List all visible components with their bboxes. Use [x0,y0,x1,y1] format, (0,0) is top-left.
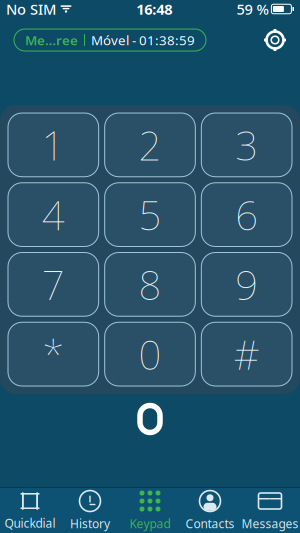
button[interactable]: # [201,322,292,386]
button[interactable]: Contacts [180,488,240,532]
staticText: 7 [42,258,65,311]
staticText: 16:48 [136,0,172,19]
button[interactable]: Quickdial [0,488,60,532]
staticText: 2 [138,118,161,171]
button[interactable]: Call [0,394,300,444]
staticText: 59 % [236,0,268,19]
staticText: 1 [42,118,65,171]
staticText: 9 [235,258,258,311]
staticText: No SIM [6,0,56,19]
button[interactable]: Me…ree [14,29,206,51]
button[interactable]: History [60,488,120,532]
staticText: Quickdial [4,515,55,531]
staticText: Contacts [185,515,234,531]
staticText: 5 [138,188,161,241]
staticText: 4 [42,188,65,241]
staticText: Messages [241,515,298,531]
staticText: 0 [138,328,161,381]
button[interactable]: Settings [258,23,292,57]
button[interactable]: 5 [105,183,195,247]
button[interactable]: 8 [105,252,195,316]
button[interactable]: 1 [8,113,99,177]
button[interactable]: 7 [8,252,99,316]
staticText: 3 [235,118,258,171]
staticText: 8 [138,258,161,311]
staticText: # [234,328,260,381]
button[interactable]: 2 [105,113,195,177]
button[interactable]: * [8,322,99,386]
staticText: Móvel - 01:38:59 [91,31,195,49]
button[interactable]: 9 [201,252,292,316]
button[interactable]: 4 [8,183,99,247]
staticText: History [70,515,110,531]
staticText: Me…ree [25,31,78,49]
staticText: Keypad [129,515,170,531]
button[interactable]: Messages [240,488,300,532]
button[interactable]: 3 [201,113,292,177]
button[interactable]: 6 [201,183,292,247]
button[interactable]: Keypad [120,488,180,532]
staticText: * [42,328,64,381]
staticText: 6 [235,188,258,241]
button[interactable]: 0 [105,322,195,386]
